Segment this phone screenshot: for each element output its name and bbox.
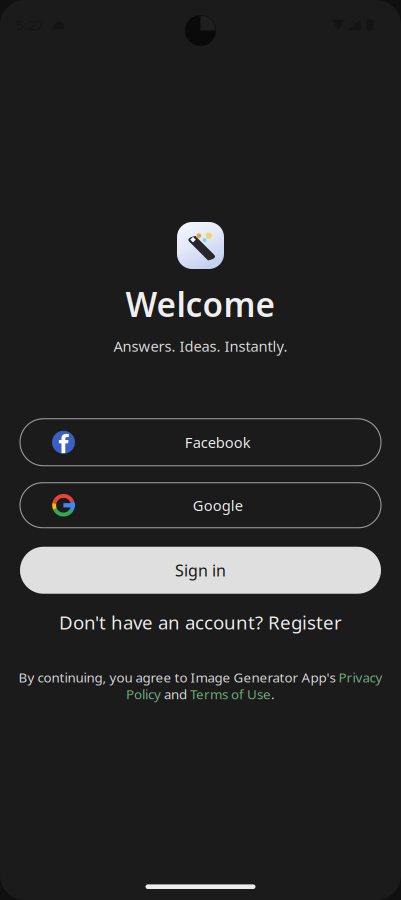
staticText: . xyxy=(271,685,275,703)
staticText: Don't have an account? Register xyxy=(59,610,342,634)
staticText: Sign in xyxy=(175,560,226,581)
staticText: Google xyxy=(193,495,243,515)
staticText: Welcome xyxy=(125,282,275,326)
staticText: Privacy xyxy=(338,668,382,686)
staticText: Terms of Use xyxy=(190,685,271,703)
button[interactable]: Google xyxy=(20,483,381,528)
staticText: Policy xyxy=(126,685,161,703)
button[interactable]: Don't have an account? Register xyxy=(59,610,342,634)
button[interactable]: Sign in xyxy=(20,547,381,594)
staticText: and xyxy=(161,685,190,703)
staticText: Facebook xyxy=(185,432,251,452)
staticText: By continuing, you agree to Image Genera… xyxy=(18,668,338,686)
staticText: Answers. Ideas. Instantly. xyxy=(113,336,287,356)
button[interactable]: Facebook xyxy=(20,419,381,466)
